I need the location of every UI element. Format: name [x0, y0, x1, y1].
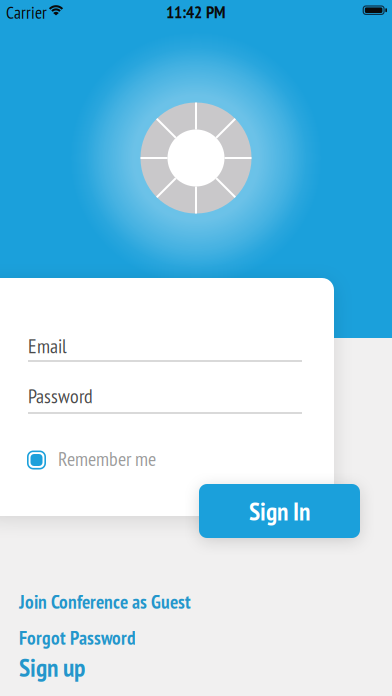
- button[interactable]: Remember me: [27, 450, 156, 469]
- button[interactable]: Forgot Password: [19, 625, 136, 650]
- staticText: Email: [28, 333, 67, 359]
- button[interactable]: Join Conference as Guest: [19, 589, 191, 614]
- staticText: Forgot Password: [19, 625, 136, 650]
- staticText: Join Conference as Guest: [19, 589, 191, 614]
- staticText: Remember me: [58, 446, 156, 471]
- staticText: 11:42 PM: [166, 0, 226, 23]
- button[interactable]: Sign up: [19, 651, 85, 684]
- staticText: Carrier: [6, 1, 47, 23]
- staticText: Sign up: [19, 651, 85, 684]
- button[interactable]: Sign In: [199, 484, 360, 538]
- staticText: Password: [28, 383, 93, 409]
- staticText: Sign In: [249, 495, 310, 527]
